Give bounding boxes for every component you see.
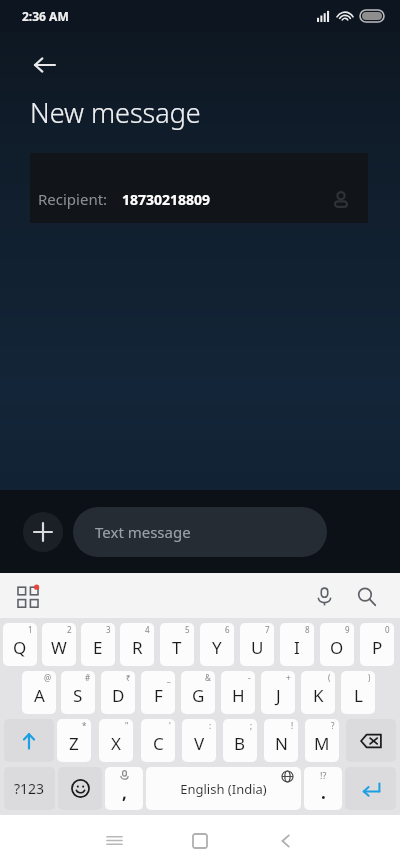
staticText: ₹ [126, 672, 131, 683]
staticText: Text message [95, 522, 191, 542]
staticText: 4 [145, 624, 150, 635]
button[interactable]: @ [22, 671, 56, 714]
button[interactable]: Enter [345, 767, 396, 810]
staticText: !? [320, 769, 327, 781]
staticText: * [82, 720, 87, 731]
staticText: B [234, 732, 246, 755]
staticText: : [209, 720, 212, 731]
staticText: Z [69, 732, 79, 755]
staticText: ) [368, 672, 371, 683]
button[interactable]: 0 [360, 623, 394, 666]
button[interactable]: : [182, 719, 216, 762]
button[interactable]: ) [341, 671, 375, 714]
staticText: 0 [385, 624, 390, 635]
button[interactable]: Backspace [346, 719, 396, 762]
staticText: D [112, 684, 125, 707]
staticText: ? [331, 720, 335, 731]
staticText: 7 [265, 624, 270, 635]
staticText: . [321, 781, 326, 804]
button[interactable]: - [221, 671, 255, 714]
staticText: 2 [67, 624, 72, 635]
button[interactable]: ' [141, 719, 175, 762]
button[interactable]: Recents [86, 815, 142, 866]
staticText: W [51, 636, 67, 659]
staticText: F [154, 684, 163, 707]
button[interactable]: 1 [3, 623, 37, 666]
staticText: 1 [28, 624, 33, 635]
button[interactable]: 9 [320, 623, 354, 666]
button[interactable]: Add attachment [23, 512, 63, 552]
staticText: M [314, 732, 330, 755]
staticText: & [205, 672, 211, 683]
staticText: Recipient: [38, 189, 108, 209]
staticText: English (India) [180, 780, 267, 798]
button[interactable]: " [99, 719, 133, 762]
staticText: ' [169, 720, 171, 731]
staticText: ! [291, 720, 294, 731]
button[interactable]: Emoji [58, 767, 102, 810]
button[interactable]: 4 [120, 623, 154, 666]
staticText: 8 [305, 624, 310, 635]
button[interactable]: ( [301, 671, 335, 714]
staticText: P [372, 636, 383, 659]
button[interactable]: Voice input [308, 580, 340, 612]
button[interactable]: 2 [42, 623, 76, 666]
staticText: A [34, 684, 45, 707]
staticText: N [275, 732, 288, 755]
staticText: " [125, 720, 129, 731]
button[interactable]: English (India) [146, 767, 301, 810]
button[interactable]: ? [305, 719, 339, 762]
staticText: Q [13, 636, 27, 659]
button[interactable]: & [181, 671, 215, 714]
button[interactable]: ! [264, 719, 298, 762]
staticText: , [122, 781, 127, 804]
staticText: ; [250, 720, 253, 731]
button[interactable]: Text message [73, 507, 327, 557]
button[interactable]: ?123 [4, 767, 55, 810]
staticText: K [313, 684, 324, 707]
staticText: E [93, 636, 103, 659]
button[interactable]: # [61, 671, 95, 714]
staticText: S [73, 684, 83, 707]
staticText: # [85, 672, 91, 683]
staticText: @ [44, 672, 52, 683]
button[interactable]: ₹ [101, 671, 135, 714]
staticText: 18730218809 [122, 190, 211, 209]
staticText: _ [167, 672, 171, 683]
button[interactable]: Shift [4, 719, 54, 762]
staticText: L [354, 684, 363, 707]
button[interactable]: Search [350, 580, 382, 612]
staticText: + [286, 672, 291, 683]
staticText: G [192, 684, 205, 707]
staticText: Y [212, 636, 222, 659]
button[interactable]: _ [141, 671, 175, 714]
button[interactable]: !? [304, 767, 342, 810]
button[interactable]: Back [258, 815, 314, 866]
staticText: 3 [106, 624, 111, 635]
button[interactable]: * [57, 719, 91, 762]
button[interactable]: 3 [81, 623, 115, 666]
button[interactable]: Home [172, 815, 228, 866]
button[interactable]: 5 [160, 623, 194, 666]
button[interactable]: 6 [200, 623, 234, 666]
button[interactable]: ; [223, 719, 257, 762]
button[interactable]: 7 [240, 623, 274, 666]
button[interactable]: + [261, 671, 295, 714]
staticText: V [194, 732, 205, 755]
staticText: 9 [345, 624, 350, 635]
staticText: I [294, 636, 300, 659]
staticText: - [248, 672, 251, 683]
staticText: C [153, 732, 164, 755]
staticText: H [232, 684, 245, 707]
staticText: ( [328, 672, 331, 683]
button[interactable]: Toolbox [12, 580, 44, 612]
button[interactable]: Recipient: [30, 153, 368, 223]
button[interactable]: 8 [280, 623, 314, 666]
button[interactable]: Choose contact [328, 187, 354, 213]
staticText: U [251, 636, 264, 659]
button[interactable]: Back [26, 46, 64, 84]
staticText: T [172, 636, 182, 659]
staticText: 5 [185, 624, 190, 635]
button[interactable]: , [105, 767, 143, 810]
staticText: 6 [225, 624, 230, 635]
